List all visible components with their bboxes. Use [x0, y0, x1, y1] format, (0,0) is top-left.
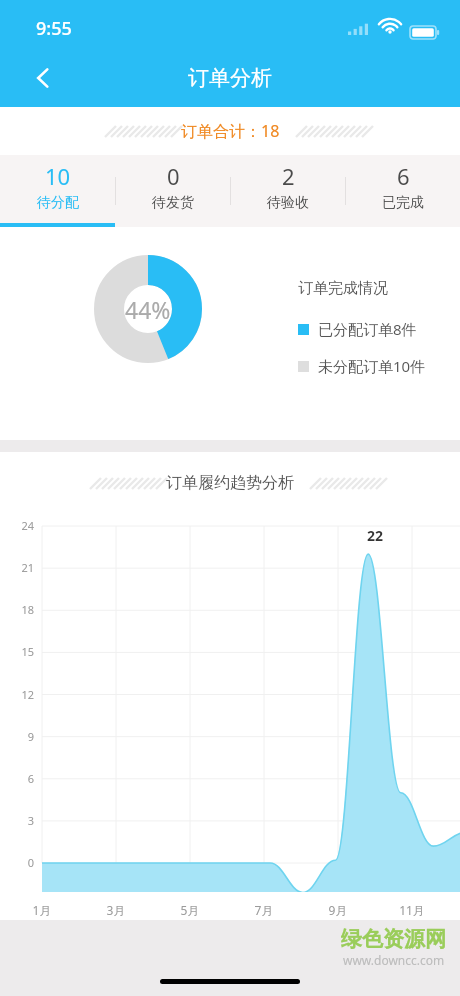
staticText: 2 — [282, 161, 295, 191]
staticText: 7月 — [246, 902, 282, 918]
staticText: 1月 — [24, 902, 60, 918]
staticText: 9月 — [320, 902, 356, 918]
staticText: 绿色资源网 — [341, 926, 446, 952]
staticText: 订单合计：18 — [181, 120, 280, 142]
staticText: 22 — [360, 526, 390, 545]
staticText: 44% — [125, 294, 171, 325]
staticText: 已分配订单8件 — [318, 319, 417, 339]
staticText: 订单完成情况 — [298, 279, 388, 298]
button[interactable]: 10 — [0, 155, 115, 227]
staticText: 3月 — [98, 902, 134, 918]
staticText: 24 — [8, 518, 34, 533]
staticText: 未分配订单10件 — [318, 356, 426, 376]
staticText: 0 — [8, 855, 34, 870]
staticText: 待验收 — [267, 194, 309, 212]
staticText: 9 — [8, 729, 34, 744]
button[interactable]: Back — [20, 55, 66, 101]
staticText: 12 — [8, 687, 34, 702]
staticText: 0 — [167, 161, 180, 191]
staticText: 待发货 — [152, 194, 194, 212]
staticText: 待分配 — [37, 194, 79, 212]
staticText: 15 — [8, 644, 34, 659]
staticText: 18 — [8, 602, 34, 617]
staticText: 5月 — [172, 902, 208, 918]
staticText: www.downcc.com — [343, 952, 445, 968]
staticText: 6 — [397, 161, 410, 191]
staticText: 9:55 — [36, 16, 72, 41]
staticText: 已完成 — [382, 194, 424, 212]
staticText: 3 — [8, 813, 34, 828]
staticText: 21 — [8, 560, 34, 575]
staticText: 订单分析 — [188, 65, 272, 91]
button[interactable]: 6 — [346, 155, 460, 227]
staticText: 10 — [45, 161, 71, 191]
button[interactable]: 2 — [231, 155, 345, 227]
staticText: 11月 — [394, 902, 430, 918]
staticText: 6 — [8, 771, 34, 786]
staticText: 订单履约趋势分析 — [166, 473, 294, 493]
button[interactable]: 0 — [116, 155, 230, 227]
